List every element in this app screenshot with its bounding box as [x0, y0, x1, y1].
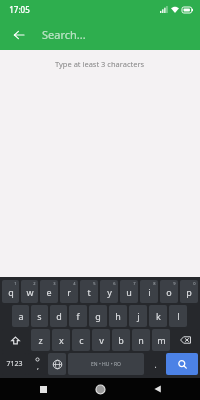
staticText: 1: [14, 281, 17, 286]
button[interactable]: Backspace: [172, 329, 198, 351]
staticText: x: [59, 334, 64, 346]
staticText: f: [76, 310, 80, 322]
button[interactable]: j: [129, 305, 147, 327]
button[interactable]: w: [21, 280, 38, 303]
button[interactable]: Shift: [2, 329, 29, 351]
staticText: j: [137, 310, 140, 322]
staticText: ,: [37, 362, 39, 372]
staticText: d: [56, 310, 62, 322]
button[interactable]: Home: [85, 378, 115, 400]
staticText: c: [79, 334, 84, 346]
staticText: 0: [193, 281, 196, 286]
staticText: e: [46, 286, 52, 298]
staticText: q: [8, 286, 14, 298]
button[interactable]: k: [149, 305, 167, 327]
button[interactable]: Back: [6, 22, 32, 48]
button[interactable]: Recent apps: [28, 378, 58, 400]
staticText: Search...: [42, 27, 86, 42]
button[interactable]: Change keyboard language: [48, 353, 66, 375]
button[interactable]: Search: [166, 353, 198, 375]
staticText: i: [148, 286, 151, 298]
staticText: .: [154, 359, 157, 370]
staticText: 7123: [6, 359, 23, 369]
staticText: 4: [73, 281, 76, 286]
staticText: r: [67, 286, 71, 298]
staticText: u: [126, 286, 132, 298]
button[interactable]: p: [180, 280, 198, 303]
staticText: Type at least 3 characters: [55, 59, 145, 69]
button[interactable]: a: [12, 305, 29, 327]
staticText: 5: [93, 281, 96, 286]
button[interactable]: t: [80, 280, 98, 303]
button[interactable]: EN • HU • RO: [68, 353, 144, 375]
button[interactable]: h: [109, 305, 127, 327]
staticText: 8: [153, 281, 156, 286]
button[interactable]: s: [31, 305, 48, 327]
staticText: 7: [133, 281, 136, 286]
button[interactable]: Search...: [42, 19, 200, 50]
staticText: a: [18, 310, 24, 322]
button[interactable]: z: [31, 329, 50, 351]
button[interactable]: g: [89, 305, 107, 327]
button[interactable]: y: [100, 280, 118, 303]
staticText: h: [115, 310, 121, 322]
staticText: 9: [173, 281, 176, 286]
button[interactable]: r: [60, 280, 78, 303]
staticText: z: [38, 334, 43, 346]
button[interactable]: m: [152, 329, 170, 351]
staticText: v: [99, 334, 104, 346]
button[interactable]: c: [72, 329, 90, 351]
staticText: 3: [53, 281, 56, 286]
staticText: b: [118, 334, 124, 346]
staticText: g: [95, 310, 101, 322]
button[interactable]: n: [132, 329, 150, 351]
staticText: y: [107, 286, 112, 298]
button[interactable]: d: [50, 305, 67, 327]
button[interactable]: o: [160, 280, 178, 303]
button[interactable]: e: [40, 280, 58, 303]
button[interactable]: 7123: [2, 353, 26, 375]
staticText: p: [186, 286, 192, 298]
button[interactable]: .: [146, 353, 164, 375]
button[interactable]: Back: [143, 378, 173, 400]
staticText: w: [26, 286, 34, 298]
staticText: 17:05: [9, 4, 30, 15]
button[interactable]: Settings and comma: [28, 353, 46, 375]
button[interactable]: u: [120, 280, 138, 303]
staticText: k: [156, 310, 161, 322]
staticText: 6: [113, 281, 116, 286]
staticText: m: [157, 334, 166, 346]
staticText: l: [177, 310, 180, 322]
button[interactable]: i: [140, 280, 158, 303]
staticText: t: [87, 286, 91, 298]
button[interactable]: f: [69, 305, 87, 327]
staticText: 2: [33, 281, 36, 286]
button[interactable]: v: [92, 329, 110, 351]
staticText: EN • HU • RO: [91, 361, 121, 368]
staticText: o: [166, 286, 172, 298]
button[interactable]: q: [2, 280, 19, 303]
staticText: s: [37, 310, 42, 322]
button[interactable]: b: [112, 329, 130, 351]
staticText: n: [138, 334, 144, 346]
button[interactable]: x: [52, 329, 70, 351]
button[interactable]: l: [169, 305, 187, 327]
